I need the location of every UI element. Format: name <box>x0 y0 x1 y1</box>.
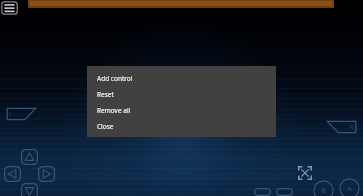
button[interactable]: Add control <box>87 70 276 86</box>
staticText: Reset <box>97 90 114 99</box>
button[interactable]: D-pad down <box>21 183 38 196</box>
staticText: Add control <box>97 74 133 83</box>
button[interactable]: Select <box>254 188 271 196</box>
button[interactable]: Start <box>276 188 293 196</box>
staticText: A <box>347 184 352 194</box>
button[interactable]: Remove all <box>87 102 276 118</box>
button[interactable]: A <box>339 178 360 196</box>
button[interactable]: B <box>313 180 334 196</box>
button[interactable]: Close <box>87 118 276 134</box>
staticText: Close <box>97 122 114 131</box>
staticText: B <box>321 186 326 196</box>
staticText: R <box>350 123 354 131</box>
staticText: L <box>9 110 13 118</box>
button[interactable]: D-pad left <box>4 166 21 182</box>
button[interactable]: Menu <box>1 1 18 15</box>
staticText: Remove all <box>97 106 131 115</box>
button[interactable]: R button <box>326 120 357 134</box>
button[interactable]: L button <box>6 107 37 121</box>
button[interactable]: D-pad up <box>21 149 38 165</box>
button[interactable]: Reset <box>87 86 276 102</box>
button[interactable]: Fullscreen <box>298 166 312 180</box>
button[interactable]: D-pad right <box>38 166 55 182</box>
